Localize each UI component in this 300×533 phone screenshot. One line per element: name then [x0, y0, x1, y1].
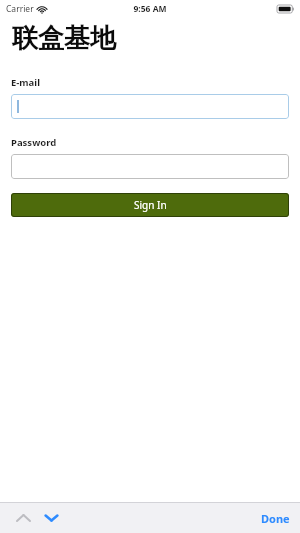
- staticText: 9:56 AM: [133, 3, 167, 15]
- staticText: 联盒基地: [12, 22, 116, 55]
- button[interactable]: Next field: [38, 505, 64, 531]
- staticText: E-mail: [11, 76, 40, 89]
- staticText: Done: [261, 511, 290, 526]
- staticText: Sign In: [134, 198, 167, 212]
- button[interactable]: [11, 94, 289, 119]
- staticText: Carrier: [6, 3, 34, 15]
- button[interactable]: [11, 154, 289, 179]
- button[interactable]: Done: [257, 507, 294, 530]
- button[interactable]: Previous field: [10, 505, 36, 531]
- staticText: Password: [11, 136, 57, 149]
- button[interactable]: Sign In: [11, 193, 289, 217]
